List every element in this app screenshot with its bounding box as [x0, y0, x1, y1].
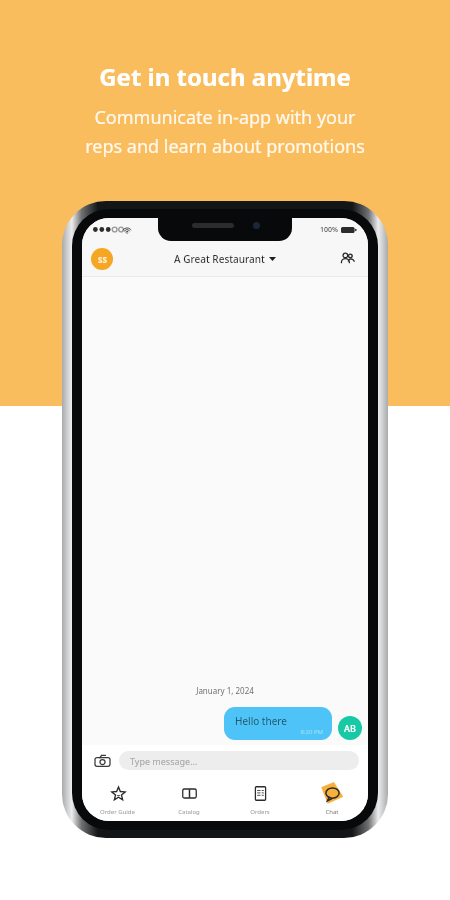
button[interactable]: Chat: [296, 776, 368, 821]
staticText: January 1, 2024: [82, 685, 368, 696]
button[interactable]: Camera: [91, 750, 113, 772]
button[interactable]: Orders: [224, 776, 296, 821]
staticText: A Great Restaurant: [174, 252, 265, 266]
staticText: Type message...: [130, 755, 198, 767]
button[interactable]: Hello there: [224, 707, 332, 740]
button[interactable]: Type message...: [119, 751, 359, 770]
staticText: Order Guide: [100, 808, 135, 816]
staticText: 8:20 PM: [235, 728, 323, 736]
staticText: 100%: [320, 225, 338, 235]
staticText: reps and learn about promotions: [85, 134, 365, 159]
button[interactable]: SS: [91, 248, 113, 270]
staticText: Orders: [250, 808, 270, 816]
staticText: Catalog: [178, 808, 200, 816]
staticText: Get in touch anytime: [99, 60, 351, 93]
button[interactable]: Order Guide: [82, 776, 153, 821]
staticText: Chat: [325, 808, 339, 816]
staticText: Communicate in-app with your: [94, 105, 356, 130]
button[interactable]: Catalog: [153, 776, 224, 821]
staticText: Hello there: [235, 714, 287, 728]
staticText: AB: [344, 722, 356, 734]
staticText: SS: [98, 254, 107, 265]
button[interactable]: A Great Restaurant: [170, 250, 280, 268]
button[interactable]: Contacts: [336, 248, 358, 270]
button[interactable]: AB: [338, 716, 362, 740]
